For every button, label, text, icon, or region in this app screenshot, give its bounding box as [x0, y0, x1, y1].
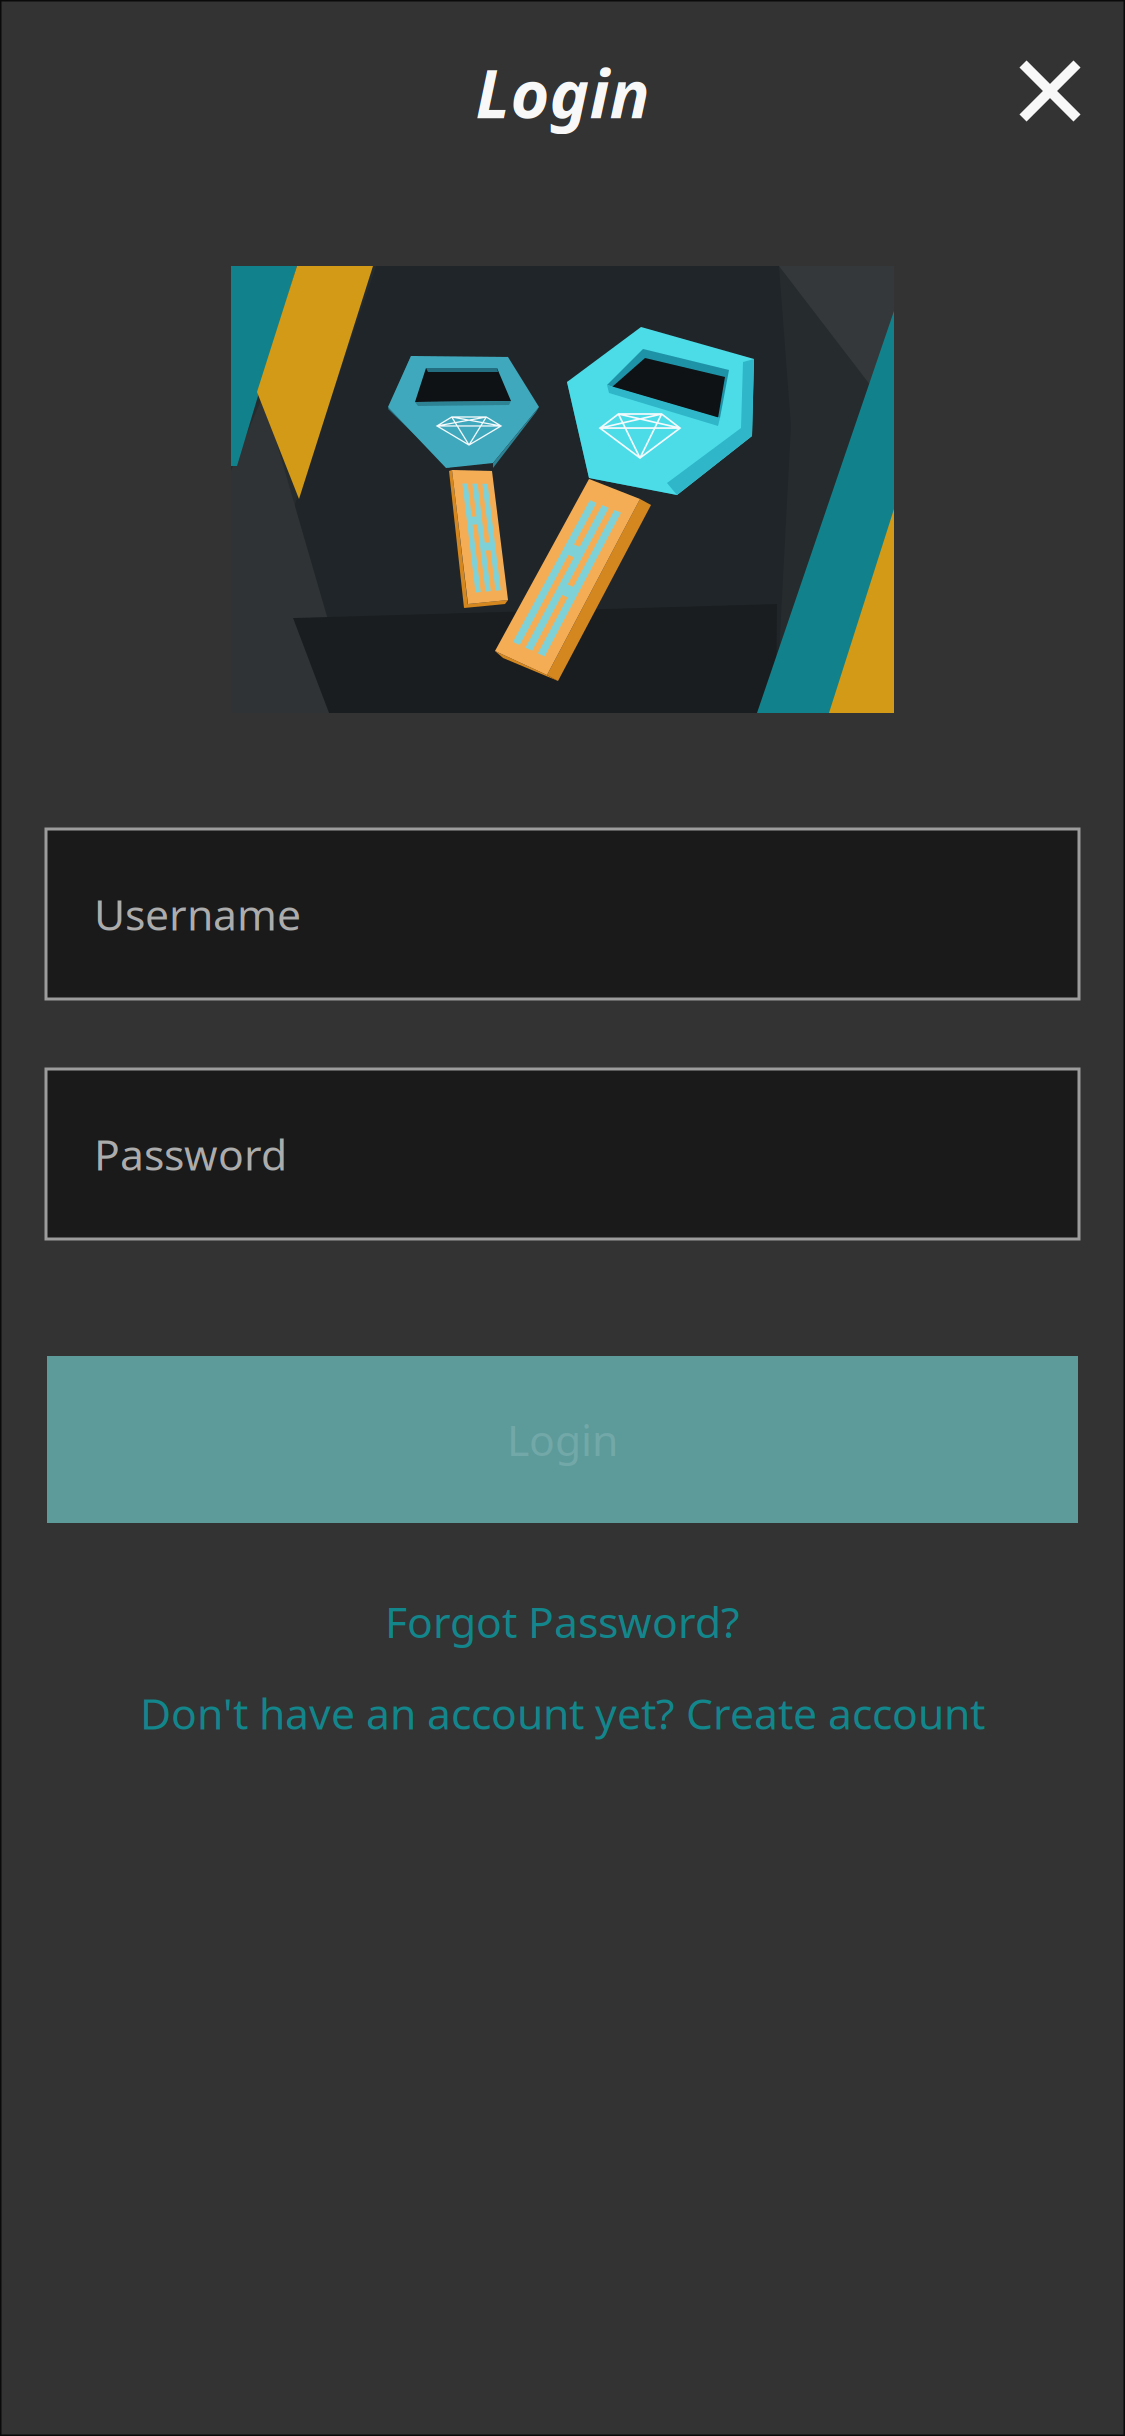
staticText: Password: [94, 1126, 287, 1182]
staticText: Login: [475, 47, 649, 138]
button[interactable]: Don't have an account yet? Create accoun…: [140, 1685, 985, 1741]
button[interactable]: Password: [46, 1069, 1079, 1239]
staticText: Username: [94, 886, 301, 942]
staticText: Don't have an account yet? Create accoun…: [140, 1685, 985, 1741]
button[interactable]: Username: [46, 829, 1079, 999]
staticText: Login: [507, 1411, 618, 1468]
button[interactable]: Forgot Password?: [385, 1593, 740, 1650]
button[interactable]: Close: [1018, 45, 1125, 123]
staticText: Forgot Password?: [385, 1593, 740, 1650]
